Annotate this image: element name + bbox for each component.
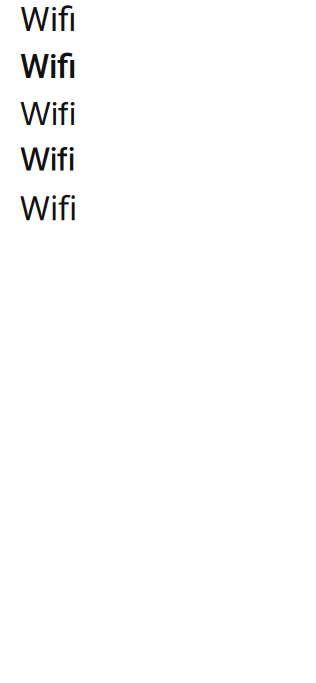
- staticText: Wifi: [20, 94, 76, 133]
- staticText: Wifi: [20, 141, 75, 178]
- staticText: Wifi: [20, 186, 77, 229]
- staticText: Wifi: [20, 47, 76, 86]
- staticText: Wifi: [20, 0, 76, 39]
